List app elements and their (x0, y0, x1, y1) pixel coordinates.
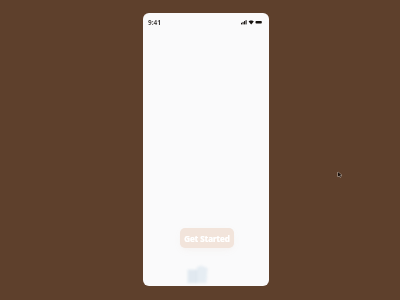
staticText: 9:41 (148, 18, 161, 27)
other: Signal, wifi and battery status (241, 20, 262, 25)
button[interactable]: Get Started (180, 228, 234, 248)
staticText: Get Started (184, 233, 230, 244)
